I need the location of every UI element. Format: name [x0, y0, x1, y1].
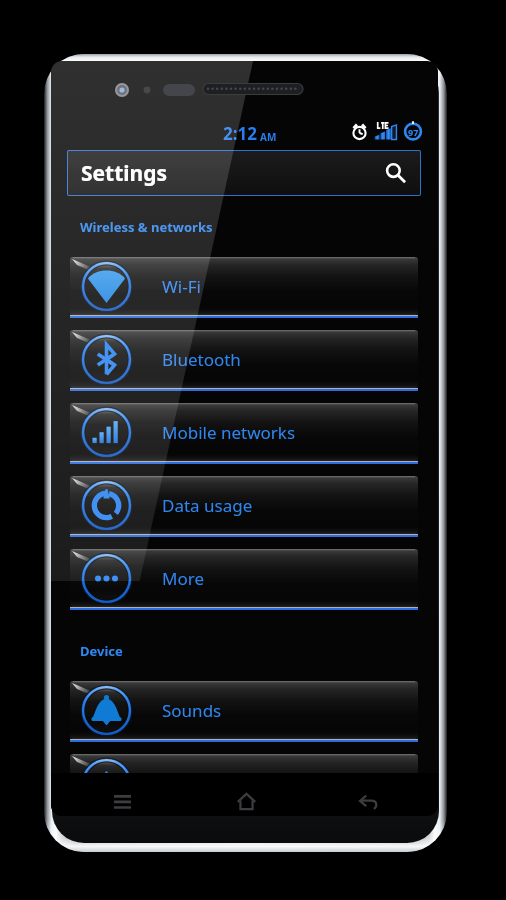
button[interactable]: Display [70, 754, 418, 812]
button[interactable]: Sounds [70, 681, 418, 739]
button[interactable]: Wi-Fi [70, 257, 418, 315]
button[interactable]: Home [224, 780, 268, 816]
staticText: Display [162, 772, 220, 795]
staticText: Bluetooth [162, 348, 241, 371]
staticText: Wireless & networks [80, 218, 213, 236]
button[interactable]: Settings [67, 150, 421, 196]
button[interactable]: Search [378, 156, 412, 190]
staticText: Sounds [162, 699, 222, 722]
button[interactable]: Data usage [70, 476, 418, 534]
button[interactable]: Mobile networks [70, 403, 418, 461]
button[interactable]: Bluetooth [70, 330, 418, 388]
staticText: 2:12 [223, 122, 257, 145]
button[interactable]: Recent apps [100, 780, 144, 816]
staticText: Device [80, 642, 123, 660]
button[interactable]: More [70, 549, 418, 607]
staticText: Wi-Fi [162, 275, 201, 298]
staticText: 97 [408, 126, 419, 138]
staticText: AM [260, 130, 277, 144]
staticText: More [162, 567, 204, 590]
staticText: Mobile networks [162, 421, 296, 444]
button[interactable]: Back [346, 780, 390, 816]
staticText: Data usage [162, 494, 253, 517]
staticText: Settings [81, 159, 168, 188]
